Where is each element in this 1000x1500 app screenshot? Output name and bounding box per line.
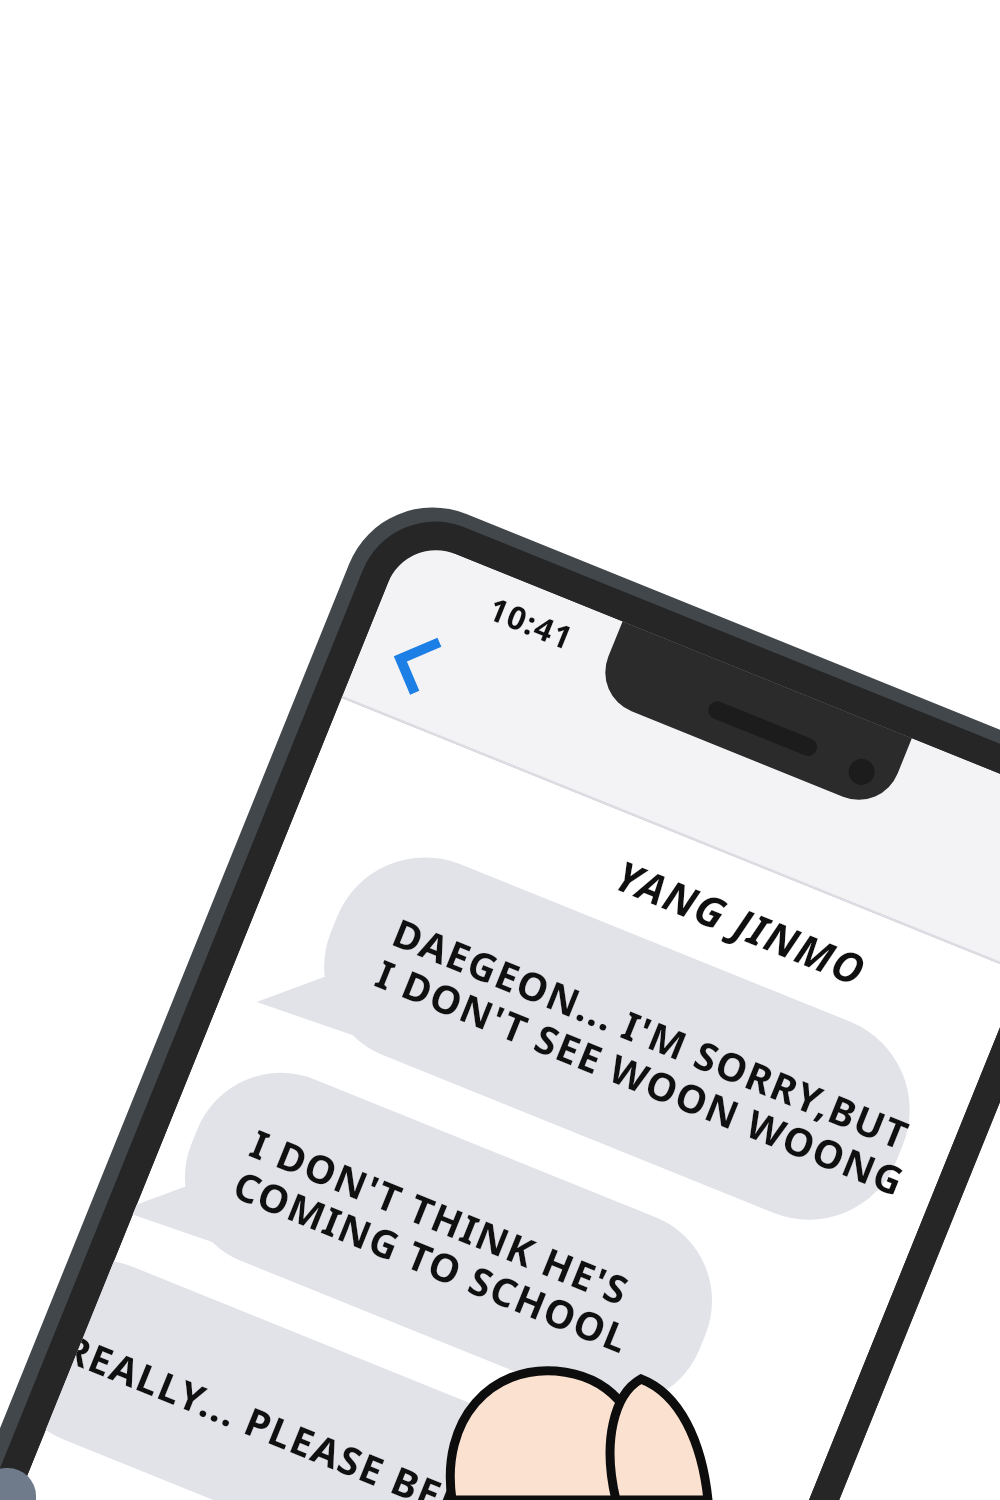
button[interactable]: Chat with Yang Jinmo xyxy=(0,0,1000,1500)
